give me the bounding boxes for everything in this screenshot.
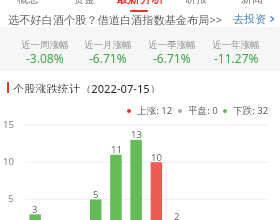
staticText: 3 [32, 203, 38, 216]
staticText: -6.71% [153, 50, 191, 66]
button[interactable]: 选不好白酒个股？借道白酒指数基金布局>> [0, 11, 280, 27]
staticText: 2 [174, 210, 180, 220]
other: 去投资 [268, 15, 276, 23]
staticText: 概念 [17, 0, 39, 4]
staticText: 近一周涨幅 [21, 39, 69, 51]
button[interactable]: 概念 [0, 0, 56, 4]
staticText: 资金 [73, 0, 95, 4]
staticText: 下跌: 32 [233, 104, 269, 117]
staticText: 近一季涨幅 [148, 39, 196, 51]
staticText: 近一月涨幅 [84, 39, 132, 51]
button[interactable]: 下跌: 32 [223, 104, 269, 117]
staticText: 最新分析 [116, 0, 164, 4]
button[interactable]: 最新分析 [112, 0, 168, 4]
staticText: 5 [8, 192, 14, 205]
staticText: 11 [111, 143, 122, 156]
staticText: 选不好白酒个股？借道白酒指数基金布局>> [8, 12, 223, 27]
staticText: 13 [131, 128, 142, 141]
staticText: 研报 [185, 0, 207, 4]
staticText: 新闻 [241, 0, 263, 4]
staticText: 10 [3, 155, 14, 168]
button[interactable]: 平盘: 0 [178, 104, 218, 117]
staticText: -11.27% [214, 50, 259, 66]
staticText: -3.08% [26, 50, 64, 66]
staticText: -6.71% [89, 50, 127, 66]
staticText: 去投资 [233, 12, 266, 26]
button[interactable]: 上涨: 12 [127, 104, 173, 117]
button[interactable]: 研报 [168, 0, 224, 4]
staticText: 10 [151, 151, 162, 164]
staticText: 近一年涨幅 [212, 39, 260, 51]
button[interactable]: 新闻 [224, 0, 280, 4]
staticText: 个股涨跌统计（2022-07-15） [13, 81, 161, 93]
staticText: 平盘: 0 [188, 104, 218, 117]
staticText: 5 [93, 188, 99, 201]
staticText: 上涨: 12 [137, 104, 173, 117]
staticText: 15 [3, 118, 14, 131]
button[interactable]: 资金 [56, 0, 112, 4]
